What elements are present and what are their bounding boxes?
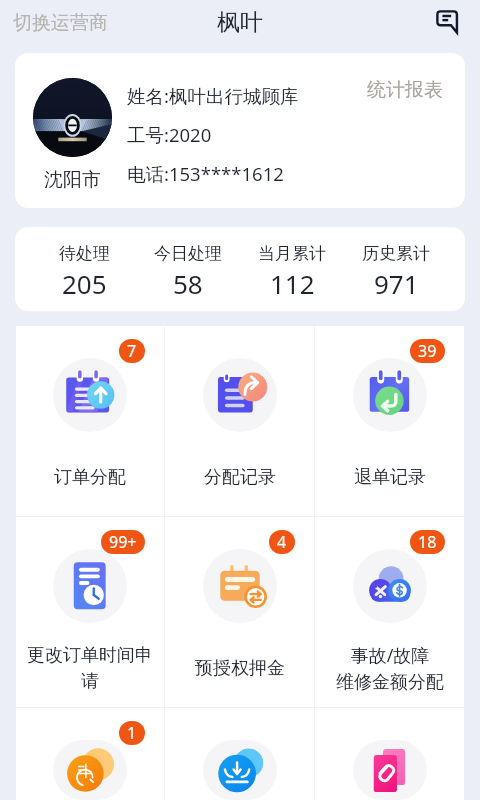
staticText: 电话:153****1612 (127, 161, 284, 186)
staticText: 112 (270, 266, 315, 301)
button[interactable] (315, 708, 464, 800)
button[interactable]: 当月累计 (240, 227, 344, 311)
staticText: 4 (277, 531, 287, 553)
staticText: 当月累计 (258, 243, 326, 264)
staticText: 分配记录 (204, 466, 276, 489)
staticText: 预授权押金 (195, 657, 285, 680)
staticText: 39 (418, 340, 437, 362)
staticText: 今日处理 (154, 243, 222, 264)
button[interactable]: 待处理 (32, 227, 136, 311)
staticText: 沈阳市 (44, 168, 101, 192)
staticText: 工号:2020 (127, 122, 212, 147)
staticText: 更改订单时间申请 (22, 644, 158, 692)
staticText: 退单记录 (354, 466, 426, 489)
staticText: 历史累计 (362, 243, 430, 264)
staticText: 58 (173, 266, 203, 301)
button[interactable]: 退单记录 (315, 326, 464, 516)
staticText: 18 (418, 531, 437, 553)
staticText: 7 (127, 340, 137, 362)
button[interactable]: 订单分配 (16, 326, 164, 516)
staticText: 切换运营商 (13, 11, 108, 35)
staticText: 205 (62, 266, 107, 301)
button[interactable]: 事故/故障 维修金额分配 (315, 517, 464, 707)
staticText: 971 (374, 266, 419, 301)
staticText: 姓名:枫叶出行城顾库 (127, 83, 299, 108)
button[interactable]: 切换运营商 (7, 6, 114, 40)
staticText: 统计报表 (367, 78, 443, 102)
button[interactable]: 1 (16, 708, 164, 800)
staticText: 待处理 (59, 243, 110, 264)
button[interactable]: 统计报表 (363, 74, 447, 106)
staticText: 事故/故障 维修金额分配 (336, 643, 444, 693)
button[interactable]: Messages (430, 4, 464, 38)
staticText: 枫叶 (217, 8, 263, 37)
staticText: 1 (127, 722, 137, 744)
button[interactable]: 历史累计 (344, 227, 448, 311)
button[interactable]: 今日处理 (136, 227, 240, 311)
button[interactable] (165, 708, 314, 800)
button[interactable]: 预授权押金 (165, 517, 314, 707)
staticText: 99+ (109, 531, 137, 553)
button[interactable]: 分配记录 (165, 326, 314, 516)
staticText: 订单分配 (54, 466, 126, 489)
button[interactable]: 更改订单时间申请 (16, 517, 164, 707)
